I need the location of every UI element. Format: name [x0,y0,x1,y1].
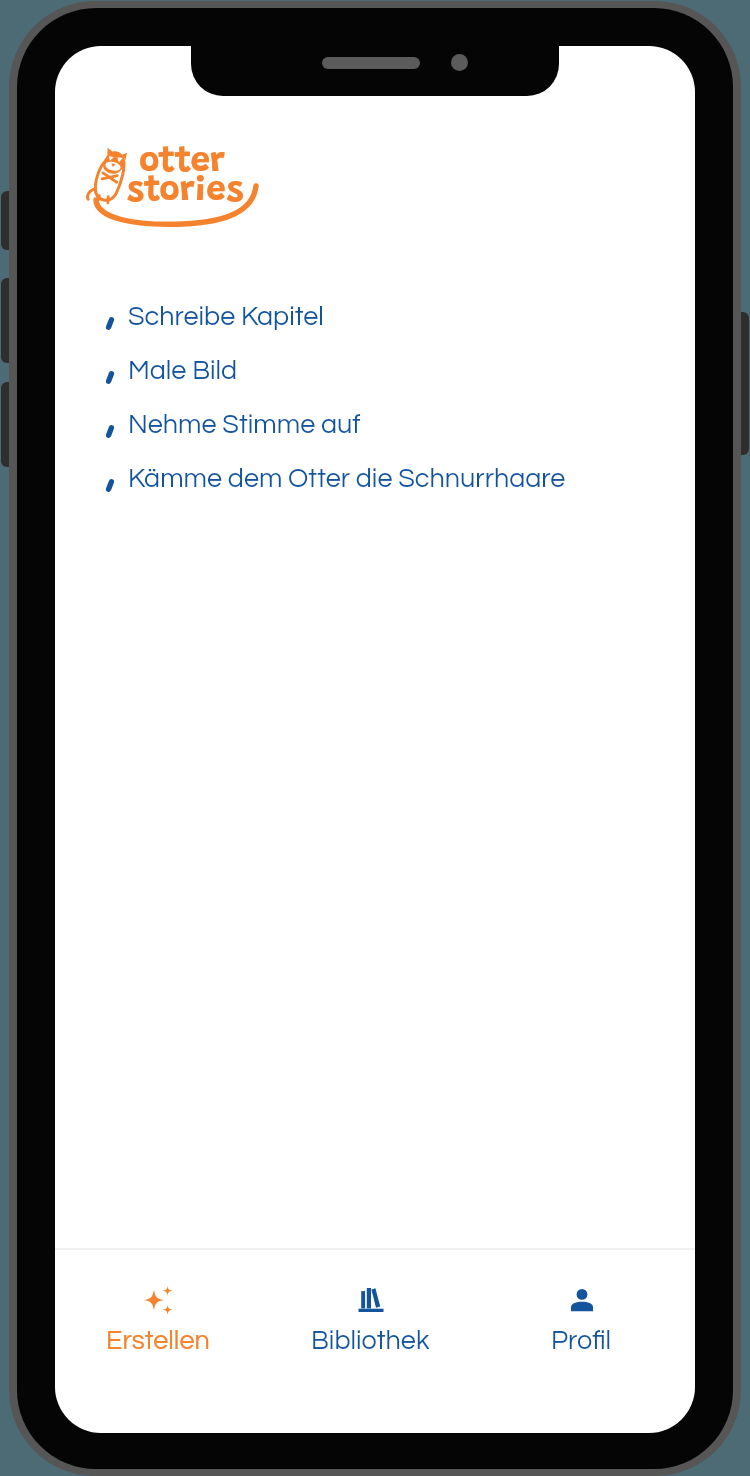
staticText: Kämme dem Otter die Schnurrhaare [128,465,566,493]
staticText: Nehme Stimme auf [128,411,361,439]
button[interactable]: Kämme dem Otter die Schnurrhaare [55,452,695,506]
staticText: otter [139,145,225,180]
button[interactable]: Male Bild [55,344,695,398]
staticText: Schreibe Kapitel [128,303,324,331]
button[interactable]: Bibliothek [269,1249,482,1355]
staticText: stories [127,174,244,209]
button[interactable]: Erstellen [55,1249,269,1355]
button[interactable]: Nehme Stimme auf [55,398,695,452]
staticText: Bibliothek [311,1327,430,1355]
staticText: Erstellen [106,1327,210,1355]
button[interactable]: Schreibe Kapitel [55,290,695,344]
staticText: Male Bild [128,357,238,385]
staticText: Profil [551,1327,612,1355]
button[interactable]: Profil [482,1249,695,1355]
